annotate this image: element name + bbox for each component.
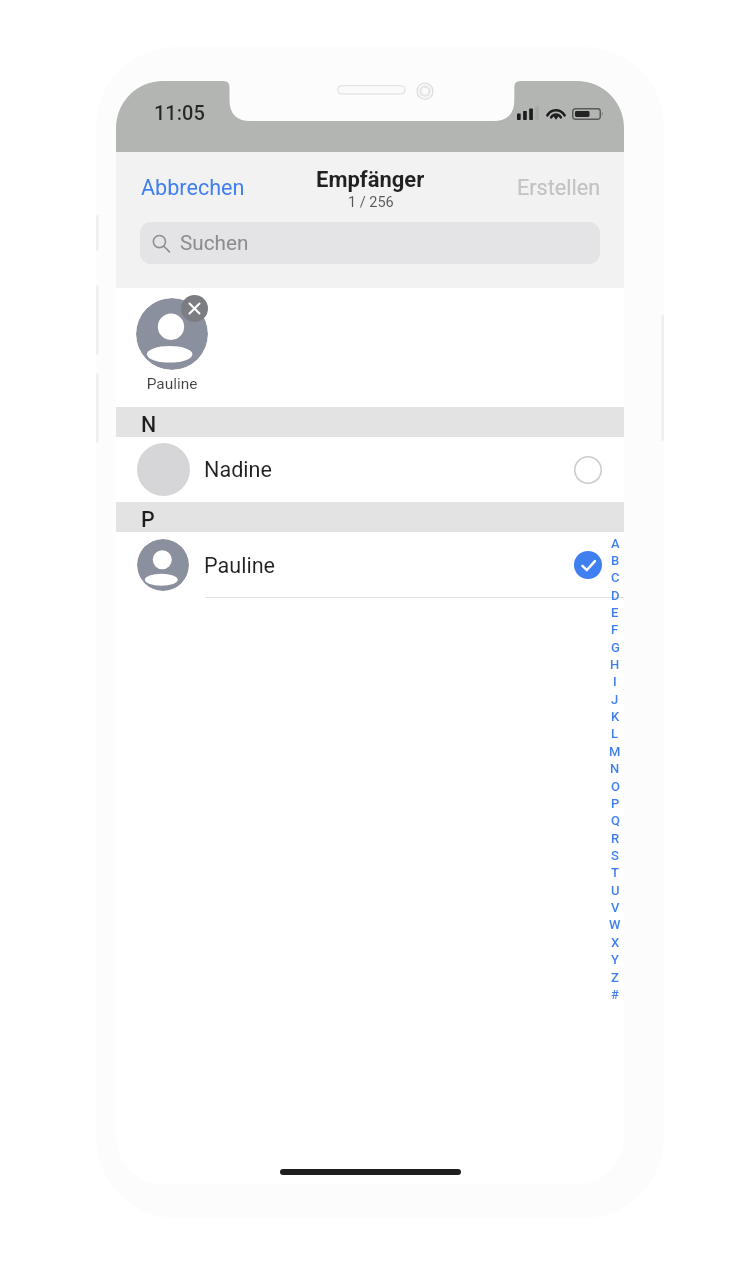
staticText: P <box>611 796 620 811</box>
staticText: M <box>609 744 621 759</box>
button[interactable]: Pauline <box>116 532 624 598</box>
staticText: H <box>610 657 620 672</box>
staticText: A <box>611 536 620 551</box>
staticText: Z <box>611 970 619 985</box>
staticText: K <box>611 709 620 724</box>
staticText: X <box>611 935 620 950</box>
staticText: G <box>611 640 620 655</box>
staticText: V <box>611 900 620 915</box>
staticText: T <box>611 865 619 880</box>
button[interactable]: Entfernen <box>181 295 208 322</box>
staticText: Pauline <box>136 375 208 393</box>
staticText: I <box>613 674 617 689</box>
staticText: L <box>611 726 619 741</box>
staticText: W <box>609 917 621 932</box>
staticText: N <box>610 761 620 776</box>
staticText: Nadine <box>204 457 272 482</box>
staticText: U <box>611 883 620 898</box>
staticText: Pauline <box>204 553 276 578</box>
staticText: # <box>611 987 619 1002</box>
button[interactable]: Suchen <box>140 222 600 264</box>
staticText: C <box>611 570 620 585</box>
button[interactable]: Nadine <box>116 437 624 502</box>
staticText: R <box>611 831 620 846</box>
staticText: B <box>611 553 620 568</box>
staticText: D <box>611 588 620 603</box>
staticText: 1 / 256 <box>348 194 394 211</box>
staticText: Q <box>611 813 620 828</box>
staticText: Y <box>611 952 619 967</box>
staticText: P <box>141 507 155 532</box>
button[interactable]: P <box>116 502 624 532</box>
button[interactable]: Erstellen <box>497 162 624 213</box>
button[interactable]: Abbrechen <box>116 162 265 213</box>
staticText: O <box>611 779 620 794</box>
staticText: Suchen <box>180 231 249 255</box>
staticText: S <box>611 848 619 863</box>
button[interactable]: N <box>116 407 624 437</box>
staticText: F <box>611 622 619 637</box>
staticText: 11:05 <box>154 101 205 124</box>
staticText: Empfänger <box>316 167 425 193</box>
staticText: N <box>141 412 157 437</box>
staticText: J <box>611 692 619 707</box>
button[interactable]: Alphabetischer Index <box>607 528 623 1008</box>
button[interactable]: Pauline <box>136 298 208 370</box>
staticText: E <box>611 605 619 620</box>
